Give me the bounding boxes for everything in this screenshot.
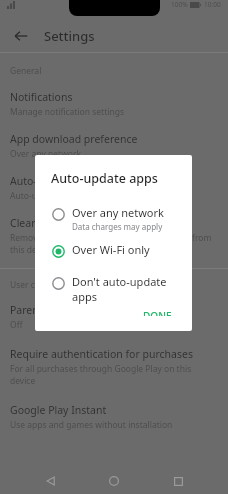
button[interactable]: Home <box>101 468 127 494</box>
staticText: General <box>10 65 42 77</box>
staticText: Data charges may apply <box>72 221 163 232</box>
button[interactable]: App download preference <box>0 132 228 160</box>
staticText: Clear local search history <box>10 216 133 230</box>
button[interactable]: DONE <box>137 306 178 319</box>
staticText: Don't auto-update apps <box>72 274 182 304</box>
staticText: Manage notification settings <box>10 106 124 118</box>
staticText: Require authentication for purchases <box>10 347 193 361</box>
staticText: Remove all the searches you have perform… <box>10 232 218 256</box>
staticText: Off <box>10 319 23 331</box>
staticText: 10:00 <box>204 0 221 9</box>
staticText: DONE <box>143 309 172 316</box>
staticText: Google Play Instant <box>10 403 107 417</box>
staticText: User controls <box>10 279 64 291</box>
button[interactable]: Don't auto-update apps <box>35 272 192 306</box>
button[interactable]: Require authentication for purchases <box>0 347 228 387</box>
staticText: Over Wi-Fi only <box>72 242 150 257</box>
button[interactable]: Parental controls <box>0 303 228 331</box>
button[interactable]: Google Play Instant <box>0 403 228 431</box>
button[interactable]: Recents <box>165 468 191 494</box>
staticText: Notifications <box>10 90 73 104</box>
staticText: Use apps and games without installation <box>10 419 173 431</box>
staticText: Auto-update apps <box>10 174 99 188</box>
staticText: 100% <box>171 0 188 9</box>
button[interactable]: Over any network <box>35 203 192 234</box>
staticText: Parental controls <box>10 303 94 317</box>
staticText: Auto-update apps <box>51 170 158 187</box>
staticText: Over any network <box>10 148 82 160</box>
button[interactable]: Notifications <box>0 90 228 118</box>
staticText: Settings <box>44 27 95 45</box>
button[interactable]: Back <box>10 25 32 47</box>
staticText: Auto-update apps over Wi-Fi only <box>10 190 143 202</box>
staticText: App download preference <box>10 132 138 146</box>
button[interactable]: Back <box>38 468 64 494</box>
button[interactable]: Over Wi-Fi only <box>35 240 192 262</box>
button[interactable]: Clear local search history <box>0 216 228 256</box>
staticText: For all purchases through Google Play on… <box>10 363 218 387</box>
staticText: Over any network <box>72 205 164 220</box>
button[interactable]: Auto-update apps <box>0 174 228 202</box>
